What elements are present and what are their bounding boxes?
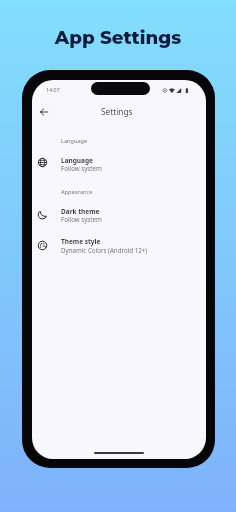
- staticText: Appearance: [61, 188, 93, 196]
- staticText: Language: [61, 137, 88, 145]
- staticText: Follow system: [61, 215, 102, 223]
- button[interactable]: Back: [34, 102, 54, 122]
- staticText: Dynamic Colors (Android 12+): [61, 246, 148, 254]
- staticText: 14:07: [46, 86, 60, 93]
- staticText: Language: [61, 156, 93, 165]
- staticText: Theme style: [61, 237, 101, 246]
- staticText: Follow system: [61, 164, 102, 172]
- staticText: Settings: [101, 106, 133, 117]
- button[interactable]: Setting: [33, 236, 51, 254]
- button[interactable]: Setting: [33, 205, 51, 223]
- staticText: App Settings: [0, 26, 236, 48]
- staticText: Dark theme: [61, 207, 100, 216]
- button[interactable]: Setting: [33, 153, 51, 171]
